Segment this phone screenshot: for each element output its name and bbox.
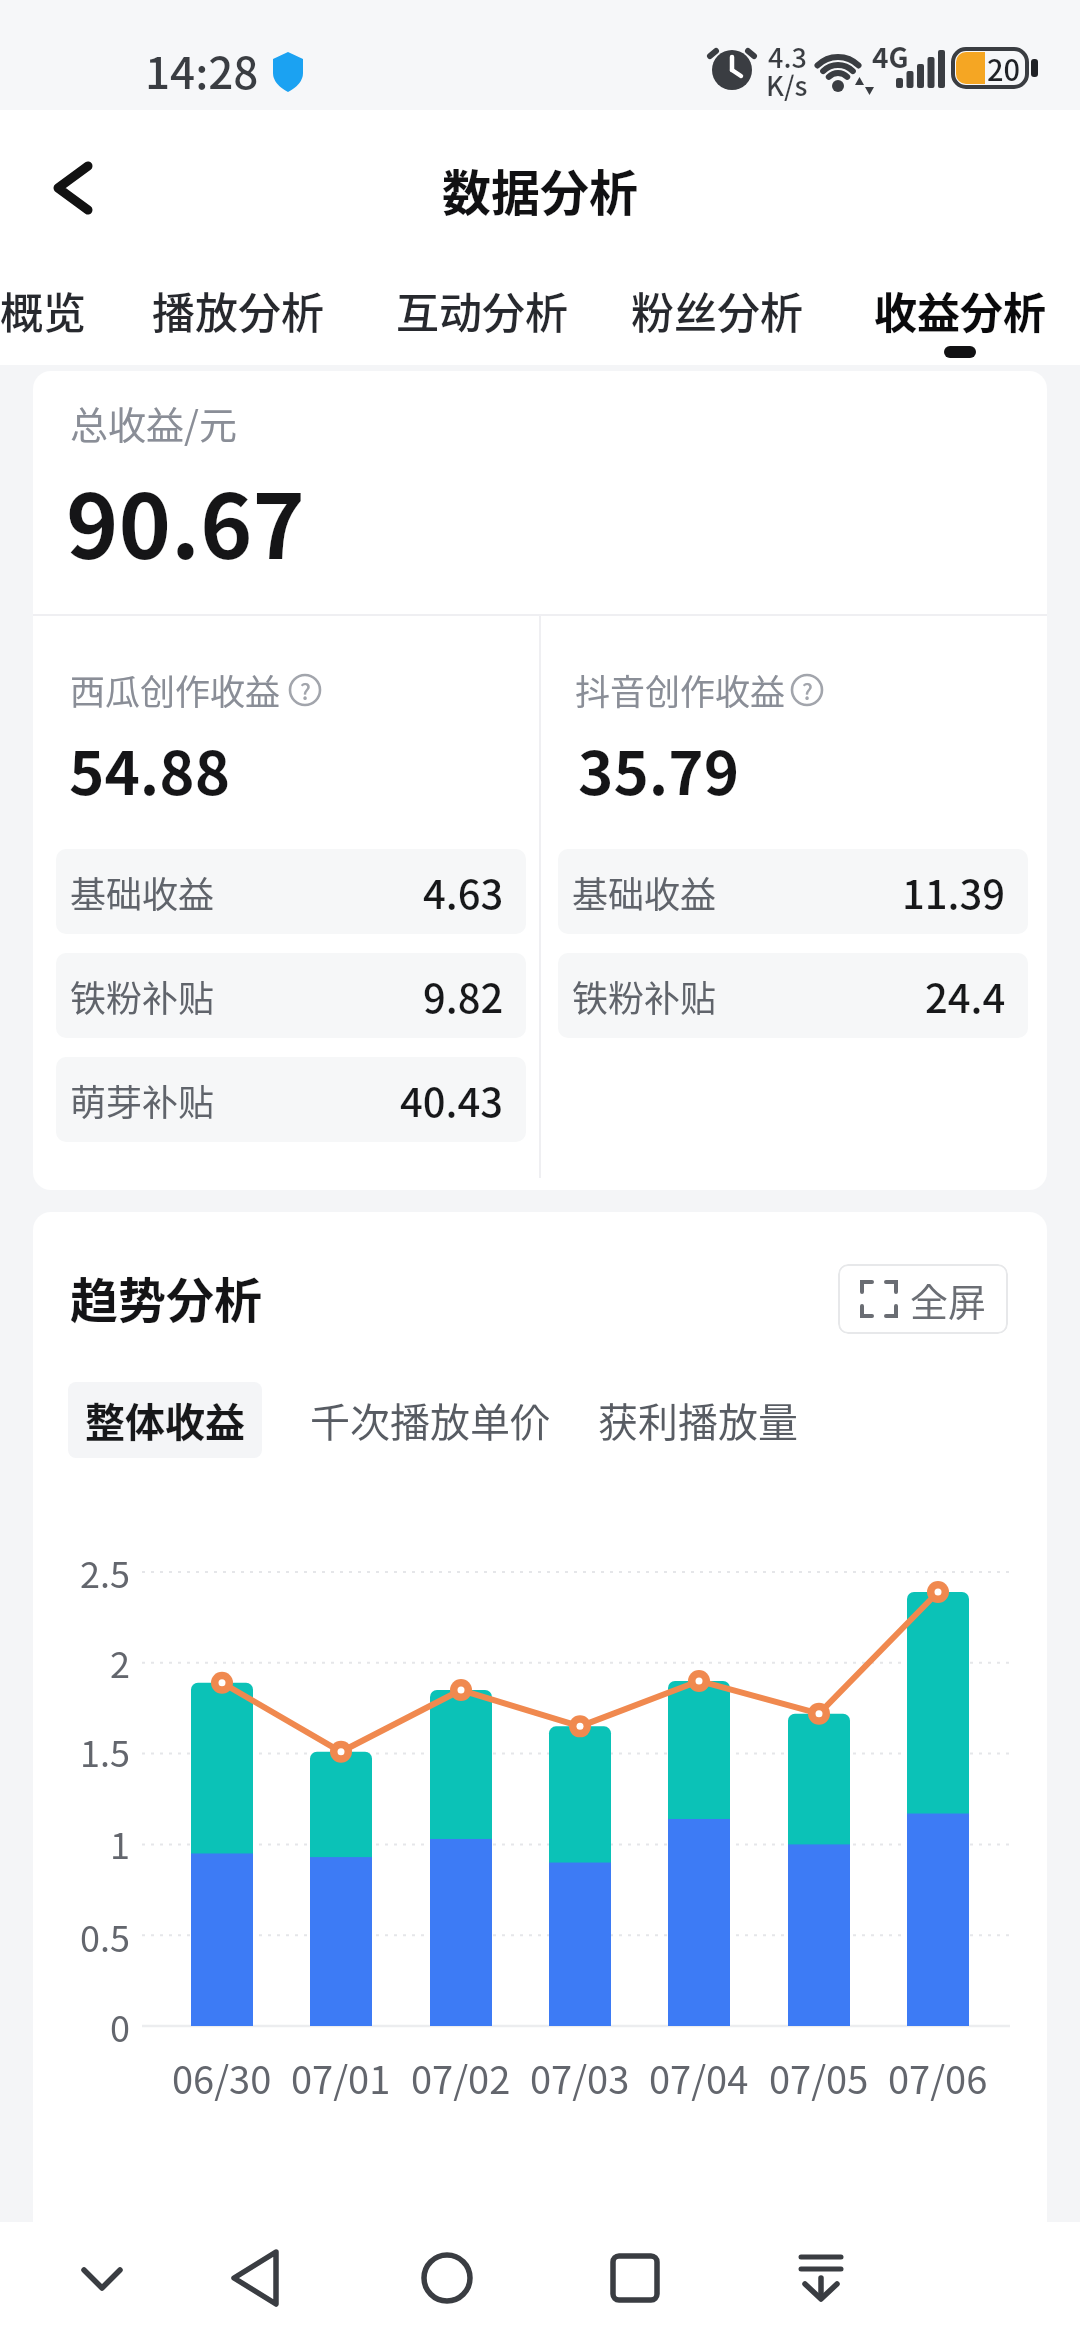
staticText: ?: [300, 674, 311, 706]
staticText: 07/04: [649, 2050, 749, 2105]
staticText: 互动分析: [396, 279, 568, 341]
button[interactable]: 铁粉补贴: [558, 953, 1028, 1038]
staticText: 概览: [0, 279, 86, 341]
staticText: 4.63: [423, 863, 504, 921]
staticText: 全屏: [910, 1272, 987, 1327]
staticText: 1: [110, 1817, 130, 1869]
staticText: 9.82: [423, 967, 504, 1025]
staticText: 20: [987, 47, 1021, 89]
staticText: 35.79: [578, 725, 740, 812]
staticText: 07/05: [769, 2050, 869, 2105]
staticText: 07/06: [888, 2050, 988, 2105]
button[interactable]: 概览: [0, 250, 86, 370]
staticText: 整体收益: [85, 1391, 245, 1449]
button[interactable]: [217, 2238, 297, 2318]
button[interactable]: 粉丝分析: [631, 250, 803, 370]
button[interactable]: 整体收益: [68, 1382, 262, 1458]
staticText: 铁粉补贴: [70, 970, 215, 1022]
staticText: K/s: [766, 65, 808, 104]
staticText: 趋势分析: [70, 1262, 263, 1332]
staticText: 0: [110, 2000, 130, 2052]
button[interactable]: 全屏: [838, 1264, 1008, 1334]
staticText: 07/01: [291, 2050, 391, 2105]
staticText: 西瓜创作收益: [70, 664, 281, 715]
staticText: 1.5: [80, 1725, 130, 1777]
staticText: 2: [110, 1636, 130, 1688]
staticText: 收益分析: [874, 279, 1046, 341]
button[interactable]: [595, 2238, 675, 2318]
staticText: 粉丝分析: [631, 279, 803, 341]
button[interactable]: 收益分析: [874, 250, 1046, 370]
staticText: 4G: [872, 36, 909, 77]
staticText: 0.5: [80, 1910, 130, 1962]
staticText: 萌芽补贴: [70, 1074, 215, 1126]
staticText: 07/03: [530, 2050, 630, 2105]
staticText: 14:28: [145, 38, 259, 102]
button[interactable]: 萌芽补贴: [56, 1057, 526, 1142]
button[interactable]: 互动分析: [396, 250, 568, 370]
staticText: 2.5: [80, 1546, 130, 1598]
button[interactable]: 获利播放量: [598, 1360, 798, 1480]
button[interactable]: 基础收益: [56, 849, 526, 934]
button[interactable]: 千次播放单价: [310, 1360, 550, 1480]
staticText: 铁粉补贴: [572, 970, 717, 1022]
staticText: 40.43: [400, 1071, 504, 1129]
staticText: 06/30: [172, 2050, 272, 2105]
button[interactable]: [407, 2238, 487, 2318]
button[interactable]: ?: [283, 668, 327, 712]
staticText: 千次播放单价: [310, 1391, 550, 1449]
staticText: 54.88: [69, 725, 231, 812]
button[interactable]: [62, 2238, 142, 2318]
button[interactable]: 播放分析: [152, 250, 324, 370]
button[interactable]: 铁粉补贴: [56, 953, 526, 1038]
button[interactable]: [781, 2238, 861, 2318]
staticText: 数据分析: [442, 154, 639, 225]
staticText: 基础收益: [572, 866, 717, 918]
staticText: 07/02: [411, 2050, 511, 2105]
staticText: 基础收益: [70, 866, 215, 918]
button[interactable]: ?: [785, 668, 829, 712]
staticText: 获利播放量: [598, 1391, 798, 1449]
staticText: 24.4: [925, 967, 1006, 1025]
button[interactable]: 基础收益: [558, 849, 1028, 934]
staticText: 抖音创作收益: [575, 664, 786, 715]
staticText: 总收益/元: [70, 395, 237, 450]
button[interactable]: [40, 150, 116, 226]
staticText: 11.39: [902, 863, 1006, 921]
staticText: 4.3: [768, 37, 807, 76]
staticText: ?: [802, 674, 813, 706]
staticText: 播放分析: [152, 279, 324, 341]
staticText: 90.67: [66, 456, 305, 585]
